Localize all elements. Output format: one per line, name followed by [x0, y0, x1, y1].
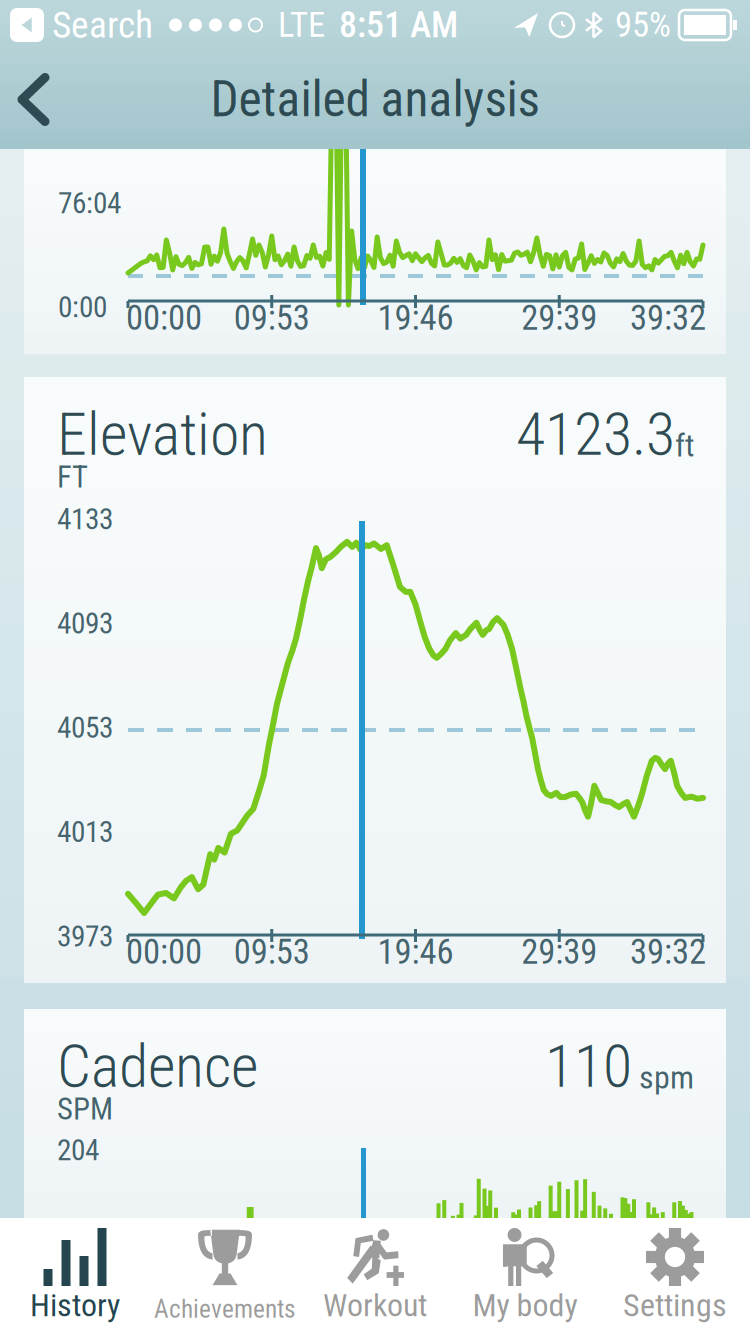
staticText: spm: [639, 1059, 694, 1096]
staticText: 4123.3: [516, 399, 675, 469]
staticText: 4093: [57, 606, 113, 641]
staticText: 09:53: [234, 932, 310, 972]
staticText: Elevation: [57, 399, 268, 469]
staticText: 00:00: [126, 932, 202, 972]
staticText: Workout: [323, 1286, 427, 1324]
staticText: Cadence: [57, 1031, 258, 1101]
button[interactable]: My body: [450, 1218, 600, 1334]
staticText: 00:00: [126, 298, 202, 338]
staticText: LTE: [278, 5, 325, 45]
staticText: FT: [57, 459, 88, 495]
staticText: Search: [52, 3, 153, 47]
staticText: SPM: [57, 1091, 113, 1127]
button[interactable]: Achievements: [150, 1218, 300, 1334]
staticText: 204: [57, 1133, 99, 1167]
staticText: 29:39: [521, 298, 597, 338]
staticText: 0:00: [58, 290, 107, 324]
staticText: 4133: [57, 502, 113, 536]
staticText: ft: [675, 427, 694, 464]
staticText: 29:39: [521, 932, 597, 972]
staticText: Achievements: [154, 1294, 296, 1324]
staticText: 39:32: [630, 298, 706, 338]
staticText: 95%: [615, 5, 671, 45]
staticText: 76:04: [58, 186, 121, 220]
button[interactable]: Settings: [600, 1218, 750, 1334]
staticText: 4013: [57, 815, 113, 849]
staticText: 8:51 AM: [339, 4, 458, 46]
staticText: 19:46: [377, 298, 453, 338]
staticText: Detailed analysis: [210, 71, 539, 128]
staticText: 39:32: [630, 932, 706, 972]
staticText: 4053: [57, 711, 113, 745]
staticText: 19:46: [377, 932, 453, 972]
staticText: 110: [545, 1031, 632, 1101]
button[interactable]: Back: [0, 53, 75, 145]
button[interactable]: Workout: [300, 1218, 450, 1334]
staticText: 09:53: [234, 298, 310, 338]
staticText: Settings: [623, 1286, 727, 1324]
staticText: History: [30, 1286, 120, 1324]
staticText: My body: [472, 1286, 577, 1324]
staticText: 3973: [57, 919, 113, 954]
button[interactable]: History: [0, 1218, 150, 1334]
